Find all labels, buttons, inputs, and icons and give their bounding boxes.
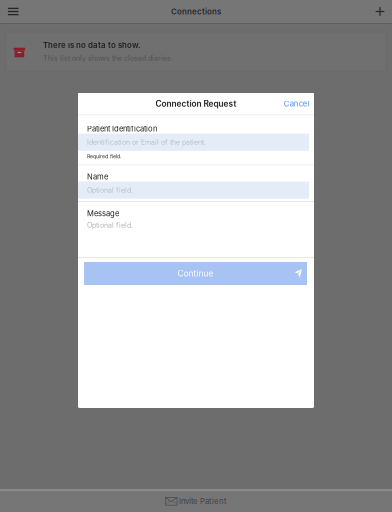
button[interactable]: Invite Patient [155,491,237,512]
staticText: Invite Patient [179,497,227,506]
staticText: Message [87,209,119,218]
staticText: Connections [171,7,221,16]
staticText: Continue [177,268,213,279]
staticText: Cancel [284,99,310,108]
staticText: Connection Request [155,99,236,109]
staticText: Required field. [87,153,122,159]
button[interactable]: There is no data to show. [0,24,392,71]
staticText: Identification or Email of the patient. [87,138,206,146]
button[interactable]: Continue [78,258,314,291]
staticText: Name [87,172,108,181]
staticText: This list only shows the closed diaries. [43,54,173,62]
button[interactable]: Menu [0,0,26,23]
staticText: There is no data to show. [43,40,141,50]
button[interactable]: Cancel [284,93,314,114]
button[interactable]: Add [368,0,392,23]
staticText: Optional field. [87,186,133,194]
staticText: Optional field. [87,221,133,230]
staticText: Patient Identification [87,124,157,133]
